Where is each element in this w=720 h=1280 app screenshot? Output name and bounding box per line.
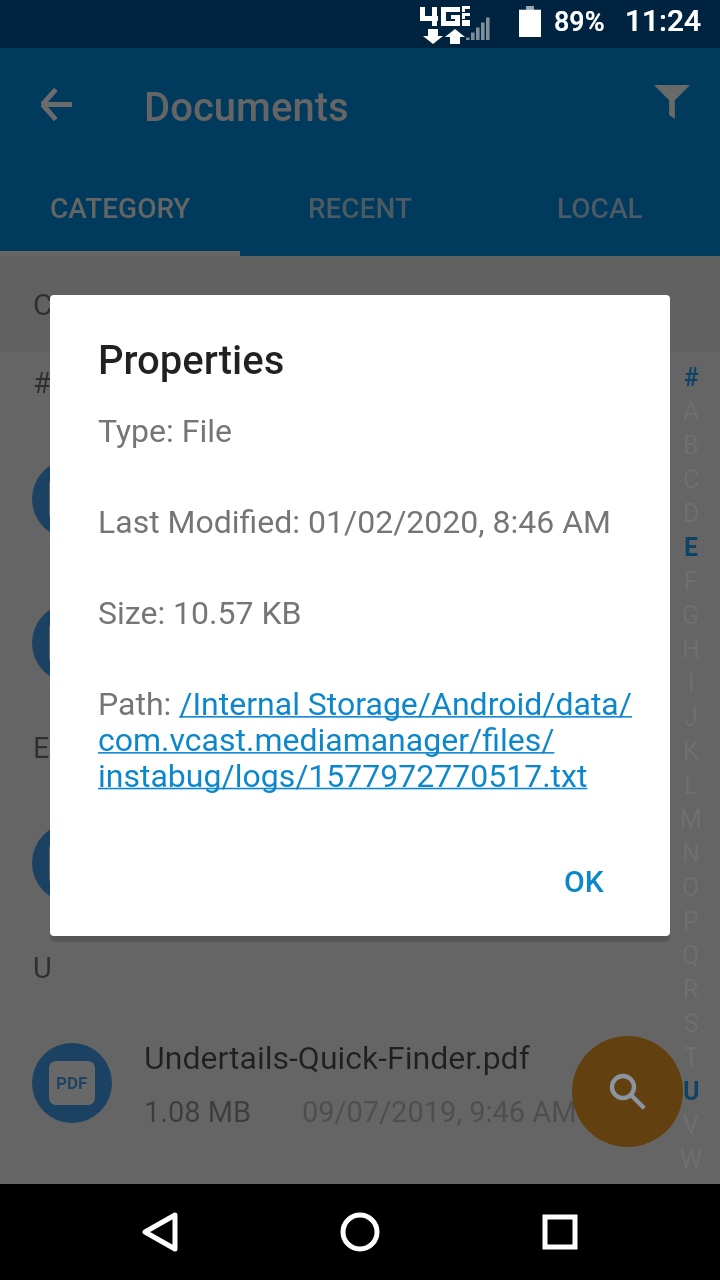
staticText: Properties <box>98 337 285 384</box>
button[interactable]: Back <box>16 64 96 144</box>
staticText: U <box>683 1077 700 1106</box>
staticText: P <box>683 907 699 936</box>
staticText: RECENT <box>308 192 412 225</box>
staticText: M <box>680 805 702 834</box>
staticText: E <box>684 533 699 562</box>
button[interactable]: Home <box>312 1184 408 1280</box>
button[interactable]: RECENT <box>240 160 480 256</box>
staticText: Undertails-Quick-Finder.pdf <box>144 1039 530 1077</box>
button[interactable]: PDF <box>0 1027 720 1139</box>
staticText: S <box>684 1009 699 1038</box>
staticText: O <box>682 873 700 902</box>
button[interactable]: Recent apps <box>512 1184 608 1280</box>
staticText: Size: 10.57 KB <box>98 594 302 632</box>
staticText: U <box>33 951 52 985</box>
button[interactable]: PDF <box>0 443 720 555</box>
staticText: 09/07/2019, 9:46 AM <box>302 1095 577 1129</box>
staticText: R <box>683 975 699 1004</box>
button[interactable]: PDF <box>0 807 720 919</box>
staticText: W <box>680 1145 703 1174</box>
staticText: 842 KB <box>144 511 237 545</box>
staticText: Q <box>682 941 700 970</box>
staticText: 1.08 MB <box>144 1095 252 1129</box>
staticText: H <box>682 635 700 664</box>
staticText: Type: File <box>98 412 232 450</box>
staticText: J <box>684 703 698 732</box>
staticText: PDF <box>56 1073 88 1093</box>
staticText: B <box>683 431 699 460</box>
staticText: CATEGORY <box>50 192 191 225</box>
staticText: A <box>683 397 700 426</box>
staticText: 01/02/2020, 8:46 AM <box>302 875 577 909</box>
staticText: 89% <box>554 6 605 38</box>
staticText: F <box>684 567 698 596</box>
button[interactable]: PDF <box>0 587 720 699</box>
staticText: Last Modified: 01/02/2020, 8:46 AM <box>98 503 611 541</box>
staticText: OK <box>564 864 604 899</box>
button[interactable]: LOCAL <box>480 160 720 256</box>
staticText: V <box>683 1111 699 1140</box>
button[interactable]: Filter <box>632 62 712 142</box>
staticText: E <box>33 731 50 765</box>
staticText: Category name <box>33 287 236 322</box>
staticText: I <box>688 669 695 698</box>
staticText: T <box>684 1043 699 1072</box>
staticText: N <box>682 839 700 868</box>
staticText: Path: /Internal Storage/Android/data/com… <box>98 685 638 794</box>
button[interactable]: Search <box>572 1036 683 1147</box>
staticText: D <box>683 499 700 528</box>
staticText: C <box>683 465 700 494</box>
staticText: 1080p-clip.mp4 <box>144 599 366 637</box>
staticText: 11/21/2019, 4:12 PM <box>302 511 576 545</box>
button[interactable]: Alphabet index <box>673 360 709 1176</box>
button[interactable]: OK <box>534 846 634 916</box>
staticText: Documents <box>144 84 349 131</box>
staticText: # <box>33 366 51 400</box>
staticText: 11:24 <box>625 3 702 38</box>
button[interactable]: CATEGORY <box>0 160 240 256</box>
button[interactable]: Back <box>112 1184 208 1280</box>
staticText: # <box>684 363 699 392</box>
staticText: G <box>682 601 700 630</box>
staticText: L <box>684 771 698 800</box>
staticText: LOCAL <box>557 192 643 225</box>
staticText: K <box>683 737 699 766</box>
